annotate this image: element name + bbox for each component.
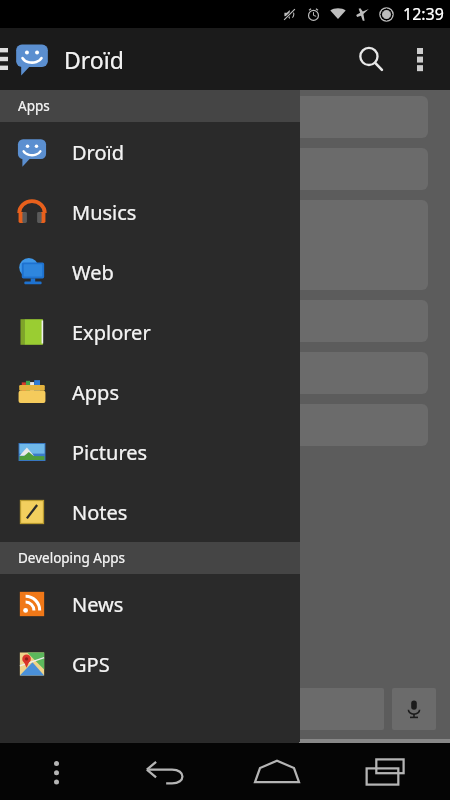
staticText: Which one is better than? [22, 106, 225, 129]
button[interactable]: Apps [0, 362, 300, 422]
staticText: Droïd [64, 44, 124, 75]
button[interactable]: Back [112, 743, 222, 800]
button[interactable]: Web [0, 242, 300, 302]
button[interactable]: Home [222, 743, 331, 800]
staticText: News [72, 591, 124, 618]
button[interactable]: Search [344, 32, 398, 86]
staticText: Droïd [72, 139, 125, 166]
staticText: Apps [72, 379, 119, 406]
staticText: GPS [72, 651, 110, 678]
button[interactable]: Musics [0, 182, 300, 242]
button[interactable]: GPS [0, 634, 300, 694]
button[interactable]: More options [398, 37, 442, 81]
button[interactable] [10, 688, 384, 730]
button[interactable]: Recent apps [331, 743, 440, 800]
button[interactable]: Voice input [392, 688, 436, 730]
staticText: Developing Apps [18, 549, 125, 567]
staticText: 12:39 [403, 3, 444, 25]
staticText: Pictures [72, 439, 148, 466]
button[interactable]: Notes [0, 482, 300, 542]
button[interactable]: Pictures [0, 422, 300, 482]
staticText: Let me think about it a minute, maybe I … [22, 222, 268, 268]
staticText: Explorer [72, 319, 151, 346]
button[interactable]: Droïd [0, 122, 300, 182]
staticText: Apps [18, 97, 50, 115]
button[interactable]: Explorer [0, 302, 300, 362]
button[interactable]: News [0, 574, 300, 634]
staticText: Notes [72, 499, 128, 526]
staticText: Musics [72, 199, 137, 226]
button[interactable]: Menu [0, 743, 112, 800]
staticText: Web [72, 259, 114, 286]
